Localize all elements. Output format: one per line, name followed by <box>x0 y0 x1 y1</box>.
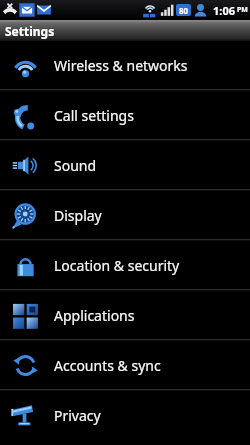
staticText: PM <box>237 5 248 15</box>
staticText: Privacy <box>54 406 101 425</box>
staticText: Settings <box>5 23 55 39</box>
button[interactable]: Sound <box>0 141 250 189</box>
staticText: 1:06 <box>213 3 235 18</box>
button[interactable]: Call settings <box>0 91 250 139</box>
staticText: 80 <box>179 5 189 16</box>
staticText: Display <box>54 206 102 225</box>
staticText: Call settings <box>54 106 134 125</box>
button[interactable]: Display <box>0 191 250 239</box>
button[interactable]: Accounts & sync <box>0 341 250 389</box>
staticText: Sound <box>54 156 97 175</box>
button[interactable]: Wireless & networks <box>0 41 250 89</box>
staticText: Wireless & networks <box>54 56 188 75</box>
staticText: Accounts & sync <box>54 356 161 375</box>
button[interactable]: Privacy <box>0 391 250 439</box>
button[interactable]: Location & security <box>0 241 250 289</box>
staticText: Applications <box>54 306 135 325</box>
button[interactable]: Applications <box>0 291 250 339</box>
staticText: Location & security <box>54 256 180 275</box>
